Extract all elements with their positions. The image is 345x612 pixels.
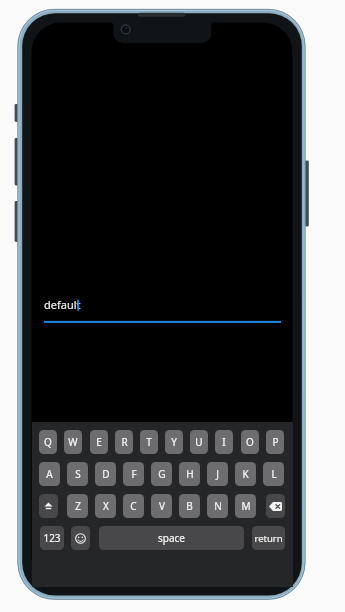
staticText: Z <box>75 499 81 513</box>
staticText: X <box>103 499 109 513</box>
button[interactable]: N <box>207 494 228 518</box>
button[interactable]: L <box>263 462 284 486</box>
staticText: N <box>214 499 222 513</box>
staticText: P <box>272 435 279 449</box>
staticText: G <box>158 467 166 481</box>
button[interactable]: Y <box>165 430 183 454</box>
staticText: I <box>222 435 226 449</box>
button[interactable]: Z <box>67 494 88 518</box>
staticText: T <box>146 435 152 449</box>
staticText: V <box>159 499 165 513</box>
button[interactable]: O <box>241 430 259 454</box>
button[interactable]: W <box>64 430 82 454</box>
staticText: A <box>46 467 53 481</box>
button[interactable]: A <box>39 462 60 486</box>
button[interactable]: J <box>207 462 228 486</box>
button[interactable]: 123 <box>40 526 64 550</box>
staticText: D <box>102 467 110 481</box>
button[interactable]: space <box>99 526 244 550</box>
button[interactable]: X <box>95 494 116 518</box>
staticText: S <box>75 467 81 481</box>
staticText: F <box>131 467 137 481</box>
staticText: M <box>241 499 251 513</box>
button[interactable]: E <box>90 430 108 454</box>
staticText: E <box>96 435 102 449</box>
staticText: J <box>216 467 219 481</box>
button[interactable]: D <box>95 462 116 486</box>
staticText: W <box>68 435 78 449</box>
staticText: default <box>44 297 81 312</box>
staticText: R <box>121 435 128 449</box>
staticText: Q <box>44 435 52 449</box>
button[interactable]: S <box>67 462 88 486</box>
staticText: C <box>130 499 137 513</box>
staticText: K <box>242 467 249 481</box>
button[interactable]: return <box>252 526 285 550</box>
button[interactable]: Backspace <box>266 494 285 518</box>
button[interactable]: Emoji keyboard <box>71 526 90 550</box>
staticText: H <box>186 467 194 481</box>
staticText: B <box>186 499 193 513</box>
staticText: 123 <box>43 531 61 545</box>
button[interactable]: G <box>151 462 172 486</box>
button[interactable]: Q <box>39 430 57 454</box>
button[interactable]: T <box>140 430 158 454</box>
button[interactable]: V <box>151 494 172 518</box>
button[interactable]: M <box>235 494 256 518</box>
staticText: U <box>195 435 203 449</box>
button[interactable]: F <box>123 462 144 486</box>
staticText: return <box>254 532 283 545</box>
button[interactable]: C <box>123 494 144 518</box>
staticText: O <box>246 435 254 449</box>
staticText: space <box>158 531 185 545</box>
staticText: L <box>271 467 277 481</box>
staticText: Y <box>171 435 177 449</box>
button[interactable]: R <box>115 430 133 454</box>
button[interactable]: U <box>190 430 208 454</box>
button[interactable]: default <box>44 295 281 323</box>
button[interactable]: I <box>215 430 233 454</box>
button[interactable]: H <box>179 462 200 486</box>
button[interactable]: Shift <box>39 494 58 518</box>
button[interactable]: P <box>266 430 284 454</box>
button[interactable]: K <box>235 462 256 486</box>
button[interactable]: B <box>179 494 200 518</box>
